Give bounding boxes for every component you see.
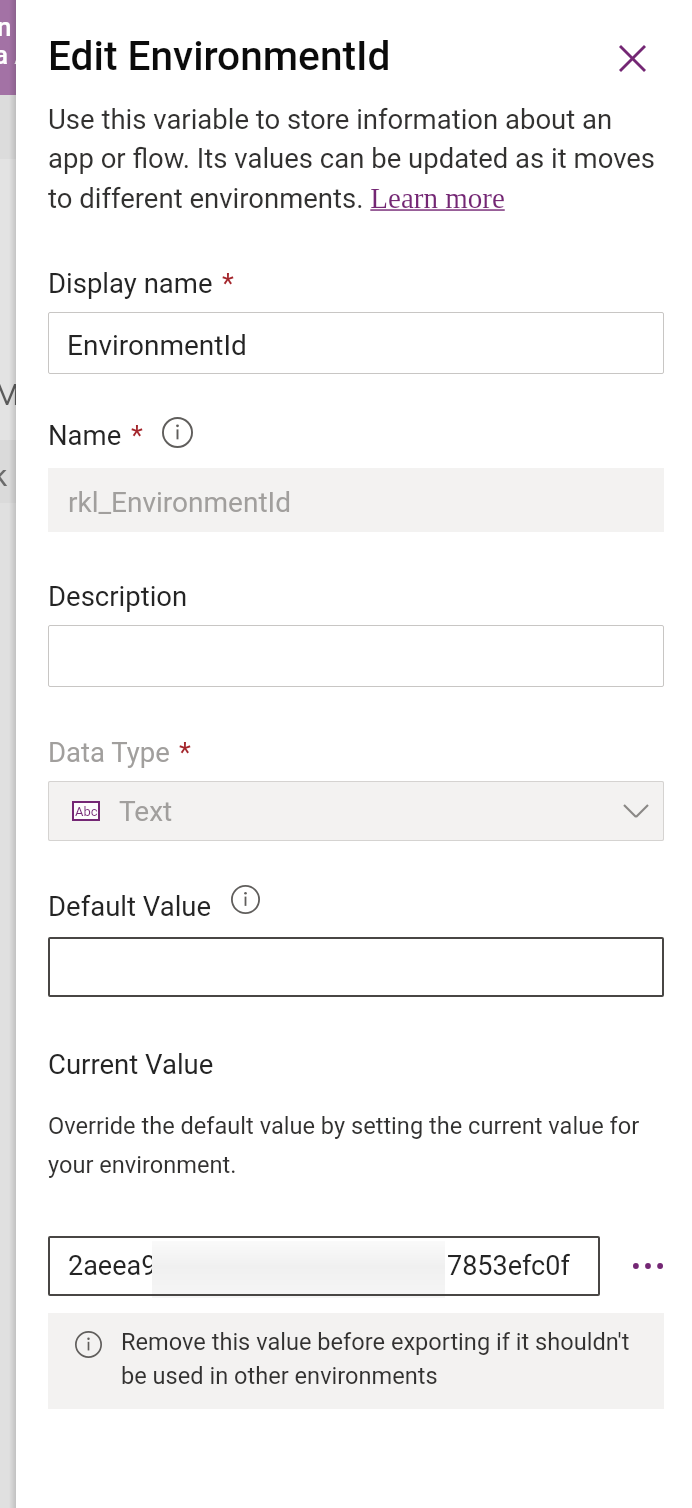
- button[interactable]: [48, 937, 664, 997]
- button[interactable]: More options: [620, 1238, 676, 1294]
- staticText: *: [222, 267, 234, 299]
- staticText: Override the default value by setting th…: [48, 1112, 664, 1179]
- staticText: M: [0, 377, 10, 412]
- staticText: Default Value: [48, 890, 212, 922]
- staticText: n: [0, 12, 12, 42]
- button[interactable]: EnvironmentId: [48, 312, 664, 374]
- staticText: Description: [48, 580, 188, 612]
- staticText: Abc: [75, 804, 98, 819]
- staticText: EnvironmentId: [67, 329, 247, 362]
- staticText: a A: [0, 40, 10, 70]
- staticText: Data Type: [48, 736, 170, 768]
- staticText: 7853efc0f: [447, 1250, 570, 1282]
- button[interactable]: [48, 625, 664, 687]
- staticText: Text: [119, 795, 173, 828]
- staticText: Name: [48, 419, 122, 451]
- staticText: rkl_EnvironmentId: [68, 486, 291, 519]
- staticText: Display name: [48, 267, 213, 299]
- staticText: Current Value: [48, 1048, 214, 1080]
- button[interactable]: 2aeea9: [48, 1236, 600, 1296]
- staticText: Edit EnvironmentId: [48, 32, 391, 80]
- staticText: *: [131, 419, 143, 451]
- staticText: 2aeea9: [68, 1250, 157, 1282]
- button[interactable]: Close: [610, 36, 654, 80]
- staticText: *: [179, 736, 191, 768]
- staticText: Remove this value before exporting if it…: [121, 1328, 649, 1390]
- staticText: Use this variable to store information a…: [48, 103, 662, 215]
- staticText: k: [0, 458, 8, 493]
